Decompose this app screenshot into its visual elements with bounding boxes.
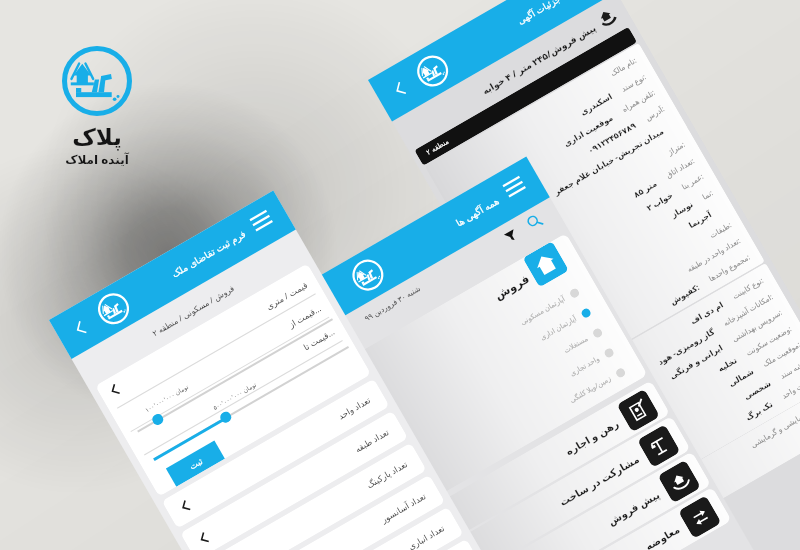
staticText: رهن و اجاره (562, 416, 621, 459)
staticText: آپارتمان اداری (538, 314, 578, 343)
button[interactable]: Filter (503, 228, 519, 244)
other: Back (391, 81, 408, 98)
staticText: فرم ثبت تقاضای ملک (169, 227, 248, 281)
button[interactable]: Back (368, 0, 616, 122)
staticText: منطقه ۲ (424, 137, 451, 158)
staticText: موقعیت اداری (561, 112, 615, 149)
staticText: سیستم سرمایشی و گرمایشی (748, 395, 800, 450)
staticText: تعداد واحد (335, 394, 373, 422)
staticText: عمر بنا: (679, 171, 705, 192)
staticText: مجموع واحدها: (706, 252, 752, 284)
button[interactable]: Back (199, 442, 427, 550)
staticText: میدان تجریش- خیابان غلام جعفر (551, 125, 665, 197)
button[interactable]: Back (217, 475, 445, 550)
staticText: تعداد اتاق: (663, 156, 696, 180)
button[interactable]: آپارتمان اداری (383, 302, 595, 435)
staticText: قیمت / متری (264, 279, 310, 313)
staticText: نوع کابینت: (730, 275, 765, 301)
button[interactable]: واحد تجاری (406, 342, 618, 475)
staticText: شنبه ۳۰ فروردین ۹۹ (362, 283, 422, 323)
staticText: اسکندری (578, 92, 614, 118)
staticText: ایرانی و فرنگی (667, 342, 724, 381)
staticText: تلفن همراه: (619, 87, 656, 114)
staticText: ۱۰۰٬۰۰۰٬۰۰۰ تومان (143, 383, 190, 414)
staticText: وضعیت سکونت: (744, 324, 793, 358)
staticText: فروش / مسکونی / منطقه ۲ (150, 282, 236, 338)
staticText: نوساز (669, 200, 695, 220)
button[interactable]: Back (162, 378, 390, 529)
staticText: مشارکت در ساخت (557, 452, 641, 509)
staticText: ثبت (187, 456, 204, 472)
button[interactable]: Menu (249, 210, 273, 231)
staticText: تعداد واحد در طبقه: (684, 235, 742, 274)
button[interactable]: آپارتمان مسکونی (371, 282, 583, 416)
staticText: موقعیت ملک: (761, 339, 800, 369)
button[interactable]: رهن و اجاره (433, 380, 670, 539)
staticText: پیش فروش/۲۴۵ متر / ۴ خوابه (479, 21, 598, 97)
staticText: نوع سند: (619, 72, 648, 94)
staticText: پیش فروش (605, 487, 662, 529)
staticText: زمین/ویلا کلنگی (568, 374, 613, 405)
staticText: ۲ خواب (644, 189, 674, 213)
button[interactable]: Back (180, 410, 408, 550)
staticText: متراژ: (665, 139, 687, 157)
staticText: آدرس: (643, 104, 666, 123)
staticText: نما: (700, 188, 715, 202)
staticText: فروش (492, 272, 531, 302)
staticText: قیمت تا... (301, 326, 337, 353)
staticText: تک برگ (743, 398, 774, 423)
button[interactable]: Back (49, 190, 296, 359)
staticText: ۸۵ متر (630, 178, 658, 200)
staticText: تخلیه (716, 356, 738, 374)
staticText: آینده املاک (65, 151, 129, 167)
staticText: ۰۹۱۲۳۴۵۶۷۸۹ (586, 121, 637, 156)
other: Back (72, 320, 88, 337)
button[interactable]: ثبت (166, 440, 225, 487)
staticText: آجرنما (687, 210, 713, 230)
staticText: تعداد پارکینگ (364, 458, 410, 492)
staticText: وضعیت واحد: (779, 371, 800, 401)
button[interactable]: Back (236, 507, 464, 550)
staticText: شخصی (742, 379, 773, 402)
button[interactable]: Back (254, 539, 482, 550)
button[interactable]: Search (524, 211, 545, 232)
staticText: تعداد طبقه (352, 426, 391, 456)
staticText: تعداد انباری (406, 522, 447, 550)
staticText: آپارتمان مسکونی (519, 294, 567, 328)
staticText: ریشه سند: (778, 356, 800, 381)
staticText: همه آگهی ها (453, 194, 501, 229)
staticText: قیمت از... (286, 303, 323, 331)
staticText: ۵۰۰٬۰۰۰٬۰۰۰ تومان (211, 381, 258, 412)
staticText: جزئیات آگهی (515, 0, 562, 26)
other: Back (178, 499, 192, 513)
staticText: مستغلات (562, 335, 589, 355)
staticText: پلاک (72, 124, 122, 151)
staticText: امکانات آشپزخانه: (721, 292, 775, 328)
staticText: ام دی اف (687, 299, 725, 327)
staticText: معاوضه (643, 524, 682, 550)
staticText: گاز رومیزی- هود (655, 326, 716, 367)
staticText: طبقات: (707, 220, 733, 240)
staticText: نام مالک: (608, 55, 638, 78)
staticText: شمالی (727, 367, 755, 389)
button[interactable]: زمین/ویلا کلنگی (417, 361, 629, 495)
button[interactable]: همه آگهی ها (302, 156, 550, 327)
button[interactable]: پیش فروش (474, 451, 711, 550)
button[interactable]: معاوضه (495, 487, 732, 550)
other: Back (197, 531, 210, 545)
button[interactable]: مشارکت در ساخت (454, 416, 691, 550)
other: Back (108, 383, 121, 397)
staticText: واحد تجاری (568, 354, 601, 379)
staticText: سرویس بهداشتی: (729, 307, 784, 344)
button[interactable]: Menu (502, 176, 526, 197)
staticText: تعداد آسانسور (379, 490, 428, 526)
staticText: کفپوش: (668, 281, 701, 307)
button[interactable]: مستغلات (394, 322, 606, 455)
